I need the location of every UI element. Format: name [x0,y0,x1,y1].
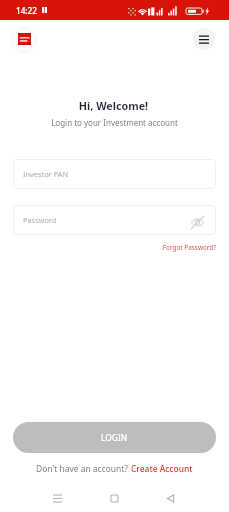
button[interactable]: Logo [11,27,37,53]
staticText: 14:22 [16,5,37,16]
staticText: Don't have an account? [36,463,131,475]
button[interactable]: Back [159,487,181,509]
button[interactable]: Create Account [131,463,193,475]
button[interactable]: Home [103,487,125,509]
button[interactable]: Forgot Password? [0,243,216,252]
button[interactable]: Password [13,205,216,235]
staticText: LOGIN [101,432,128,443]
button[interactable]: Investor PAN [13,159,216,189]
button[interactable]: Menu [193,28,215,50]
button[interactable]: Recents [46,487,68,509]
other: Show password [191,216,204,229]
staticText: Hi, Welcome! [0,99,228,114]
staticText: Password [23,215,57,225]
button[interactable]: LOGIN [13,422,216,453]
staticText: Investor PAN [23,169,69,179]
staticText: Login to your Investment account [0,117,229,128]
